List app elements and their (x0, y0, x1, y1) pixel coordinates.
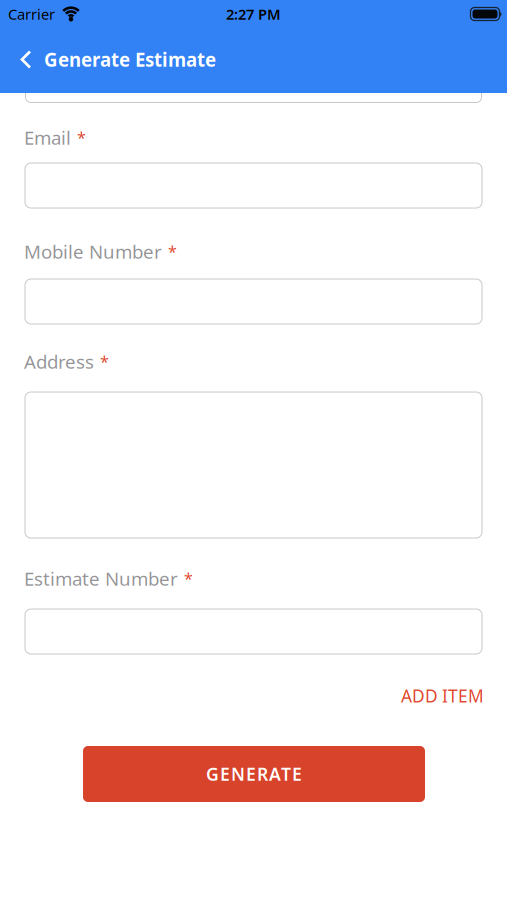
staticText: GENERATE (206, 762, 302, 786)
button[interactable]: ADD ITEM (401, 684, 484, 708)
staticText: Estimate Number (24, 566, 178, 591)
staticText: * (168, 240, 177, 262)
staticText: * (184, 567, 193, 589)
staticText: * (77, 126, 86, 148)
button[interactable]: GENERATE (83, 746, 425, 802)
staticText: Mobile Number (24, 239, 162, 264)
staticText: Generate Estimate (44, 47, 216, 72)
staticText: 2:27 PM (226, 4, 281, 24)
staticText: ADD ITEM (401, 684, 484, 708)
staticText: Email (24, 125, 71, 150)
button[interactable]: Back (0, 48, 216, 73)
staticText: Carrier (8, 4, 55, 24)
staticText: Address (24, 349, 94, 374)
staticText: * (100, 350, 109, 372)
